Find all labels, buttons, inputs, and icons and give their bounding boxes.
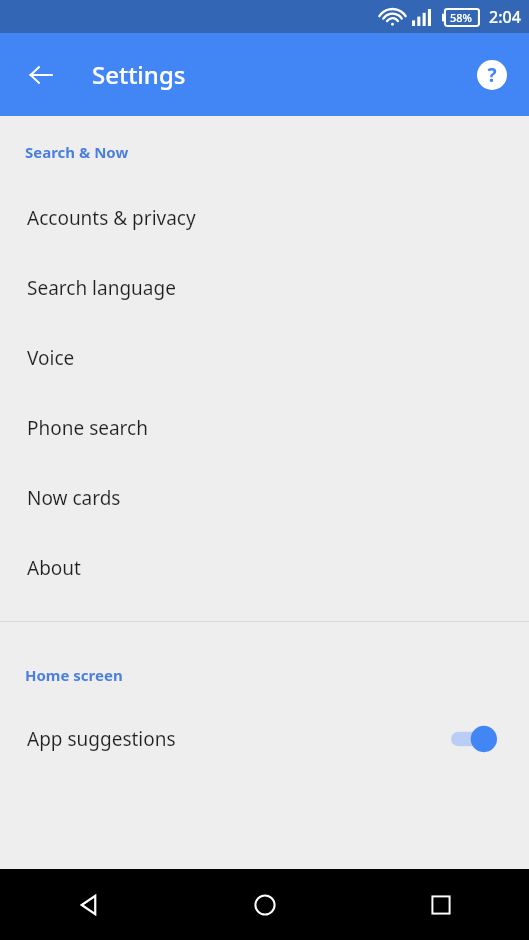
- button[interactable]: Phone search: [0, 393, 529, 463]
- button[interactable]: Back: [16, 50, 66, 100]
- staticText: ?: [487, 62, 497, 88]
- staticText: 2:04: [489, 6, 521, 28]
- button[interactable]: Accounts & privacy: [0, 183, 529, 253]
- staticText: Phone search: [27, 415, 148, 441]
- staticText: Now cards: [27, 485, 121, 511]
- button[interactable]: Search language: [0, 253, 529, 323]
- staticText: 58%: [450, 10, 472, 25]
- button[interactable]: Now cards: [0, 463, 529, 533]
- button[interactable]: Home: [177, 869, 353, 940]
- button[interactable]: Back: [0, 869, 177, 940]
- button[interactable]: Recent apps: [353, 869, 529, 940]
- staticText: Settings: [92, 58, 186, 91]
- button[interactable]: Help: [469, 52, 515, 98]
- staticText: App suggestions: [27, 726, 451, 752]
- button[interactable]: Voice: [0, 323, 529, 393]
- staticText: Accounts & privacy: [27, 205, 196, 231]
- staticText: Voice: [27, 345, 75, 371]
- staticText: Search & Now: [25, 142, 129, 162]
- button[interactable]: About: [0, 533, 529, 603]
- staticText: Home screen: [25, 665, 123, 685]
- button[interactable]: App suggestions: [0, 710, 529, 768]
- staticText: About: [27, 555, 81, 581]
- staticText: Search language: [27, 275, 176, 301]
